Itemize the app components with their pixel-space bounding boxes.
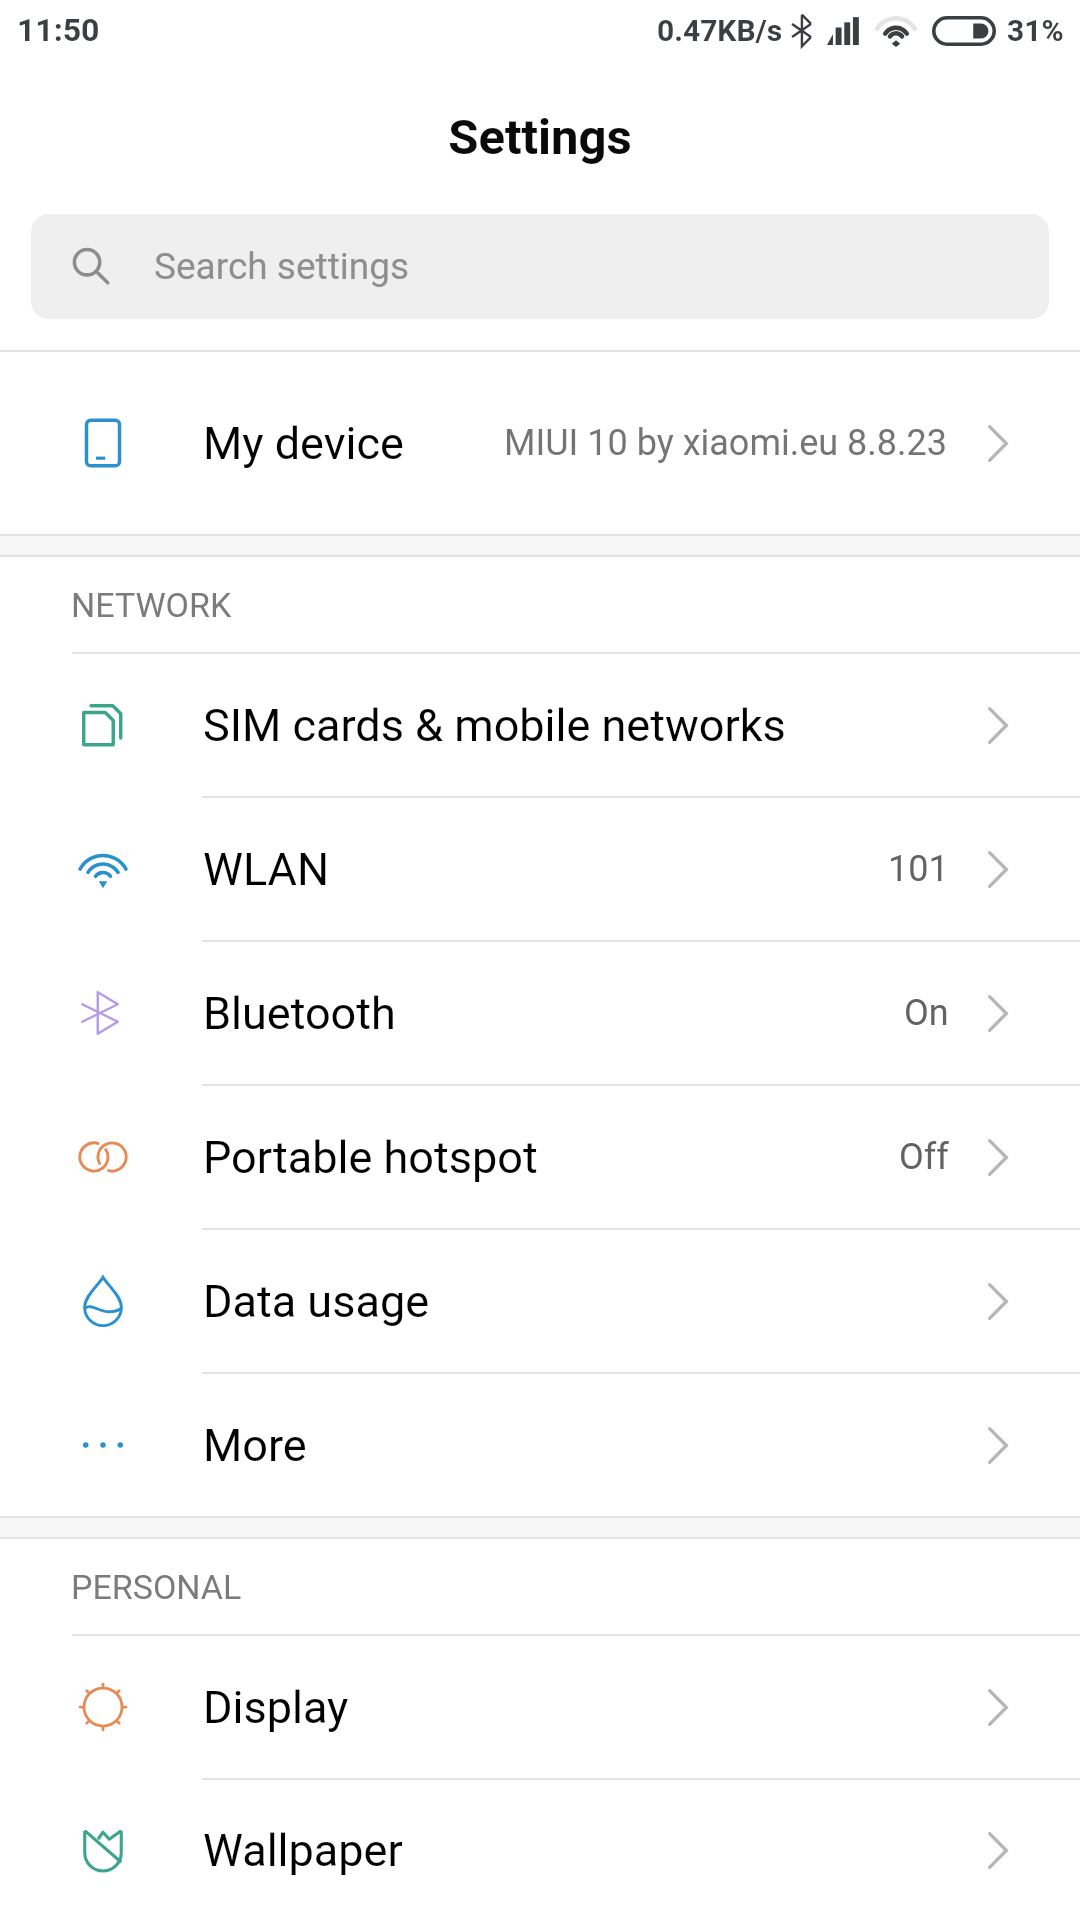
staticText: MIUI 10 by xiaomi.eu 8.8.23 <box>504 422 947 464</box>
staticText: 11:50 <box>17 11 100 49</box>
button[interactable]: SIM cards & mobile networks <box>0 654 1080 796</box>
staticText: Settings <box>448 109 632 166</box>
staticText: Wallpaper <box>203 1824 403 1877</box>
staticText: On <box>904 992 949 1034</box>
staticText: Display <box>203 1681 349 1734</box>
staticText: More <box>203 1419 307 1472</box>
button[interactable]: Portable hotspot <box>0 1086 1080 1228</box>
staticText: My device <box>203 417 404 470</box>
staticText: 31% <box>1007 13 1064 48</box>
staticText: Data usage <box>203 1275 430 1328</box>
staticText: 0.47KB/s <box>657 13 783 48</box>
staticText: Portable hotspot <box>203 1131 538 1184</box>
button[interactable]: WLAN <box>0 798 1080 940</box>
button[interactable]: Wallpaper <box>0 1780 1080 1920</box>
staticText: SIM cards & mobile networks <box>203 699 786 752</box>
staticText: Off <box>899 1136 949 1178</box>
staticText: NETWORK <box>71 585 232 625</box>
button[interactable]: More <box>0 1374 1080 1516</box>
staticText: WLAN <box>203 843 330 896</box>
button[interactable]: My device <box>0 352 1080 534</box>
button[interactable]: Search settings <box>31 214 1049 319</box>
button[interactable]: Bluetooth <box>0 942 1080 1084</box>
button[interactable]: Data usage <box>0 1230 1080 1372</box>
staticText: PERSONAL <box>71 1567 242 1607</box>
staticText: 101 <box>888 848 949 890</box>
staticText: Bluetooth <box>203 987 396 1040</box>
button[interactable]: Display <box>0 1636 1080 1778</box>
staticText: Search settings <box>154 245 410 288</box>
